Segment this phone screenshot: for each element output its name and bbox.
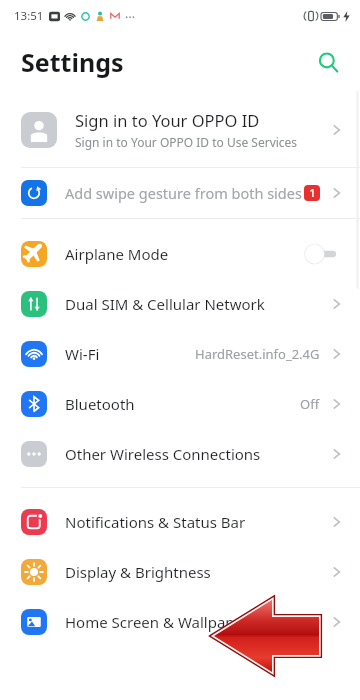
staticText: Display & Brightness: [65, 562, 330, 582]
staticText: HardReset.info_2.4G: [195, 345, 320, 363]
button[interactable]: Sign in to Your OPPO ID: [0, 92, 360, 167]
button[interactable]: Dual SIM & Cellular Network: [0, 279, 360, 329]
staticText: Add swipe gesture from both sides: [65, 183, 304, 203]
button[interactable]: Notifications & Status Bar: [0, 497, 360, 547]
staticText: Bluetooth: [65, 394, 300, 414]
staticText: 1: [309, 186, 316, 200]
button[interactable]: Airplane Mode: [0, 229, 360, 279]
staticText: Notifications & Status Bar: [65, 512, 330, 532]
button[interactable]: Home Screen & Wallpaper: [0, 597, 360, 647]
staticText: Other Wireless Connections: [65, 444, 330, 464]
button[interactable]: Search: [310, 44, 346, 80]
staticText: Home Screen & Wallpaper: [65, 612, 330, 632]
button[interactable]: Other Wireless Connections: [0, 429, 360, 479]
staticText: Airplane Mode: [65, 244, 300, 264]
staticText: Sign in to Your OPPO ID to Use Services: [75, 134, 298, 150]
staticText: Dual SIM & Cellular Network: [65, 294, 330, 314]
button[interactable]: Display & Brightness: [0, 547, 360, 597]
staticText: Wi-Fi: [65, 344, 195, 364]
staticText: Settings: [21, 45, 124, 79]
staticText: Sign in to Your OPPO ID: [75, 109, 260, 131]
staticText: 13:51: [14, 8, 44, 24]
staticText: Off: [300, 395, 320, 413]
button[interactable]: Wi-Fi: [0, 329, 360, 379]
button[interactable]: Bluetooth: [0, 379, 360, 429]
button[interactable]: Add swipe gesture from both sides: [0, 168, 360, 218]
